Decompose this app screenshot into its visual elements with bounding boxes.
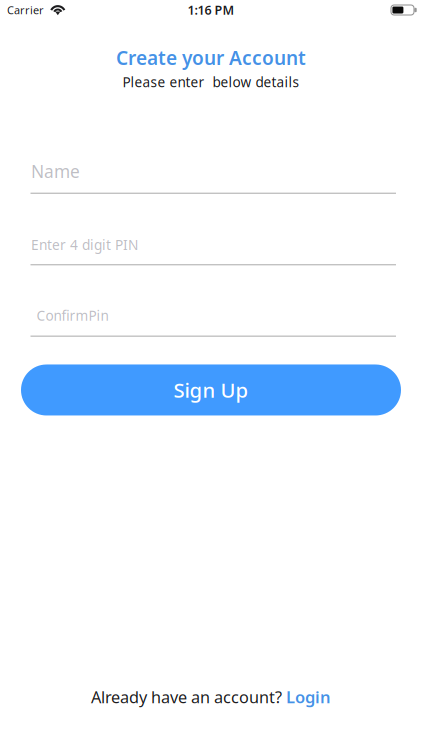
staticText: Login xyxy=(286,685,331,708)
button[interactable]: Enter 4 digit PIN xyxy=(21,235,401,265)
button[interactable]: Name xyxy=(21,159,401,194)
staticText: Enter 4 digit PIN xyxy=(31,235,138,254)
staticText: 1:16 PM xyxy=(187,1,234,19)
button[interactable]: Sign Up xyxy=(21,364,401,415)
button[interactable]: ConfirmPin xyxy=(21,306,401,337)
staticText: Create your Account xyxy=(116,45,306,71)
staticText: Name xyxy=(31,159,80,183)
staticText: Carrier xyxy=(7,3,44,17)
staticText: ConfirmPin xyxy=(36,306,108,325)
staticText: Please enter below details xyxy=(122,73,299,91)
staticText: Already have an account? xyxy=(91,686,286,708)
staticText: Sign Up xyxy=(173,376,248,404)
button[interactable]: Login xyxy=(286,685,331,708)
